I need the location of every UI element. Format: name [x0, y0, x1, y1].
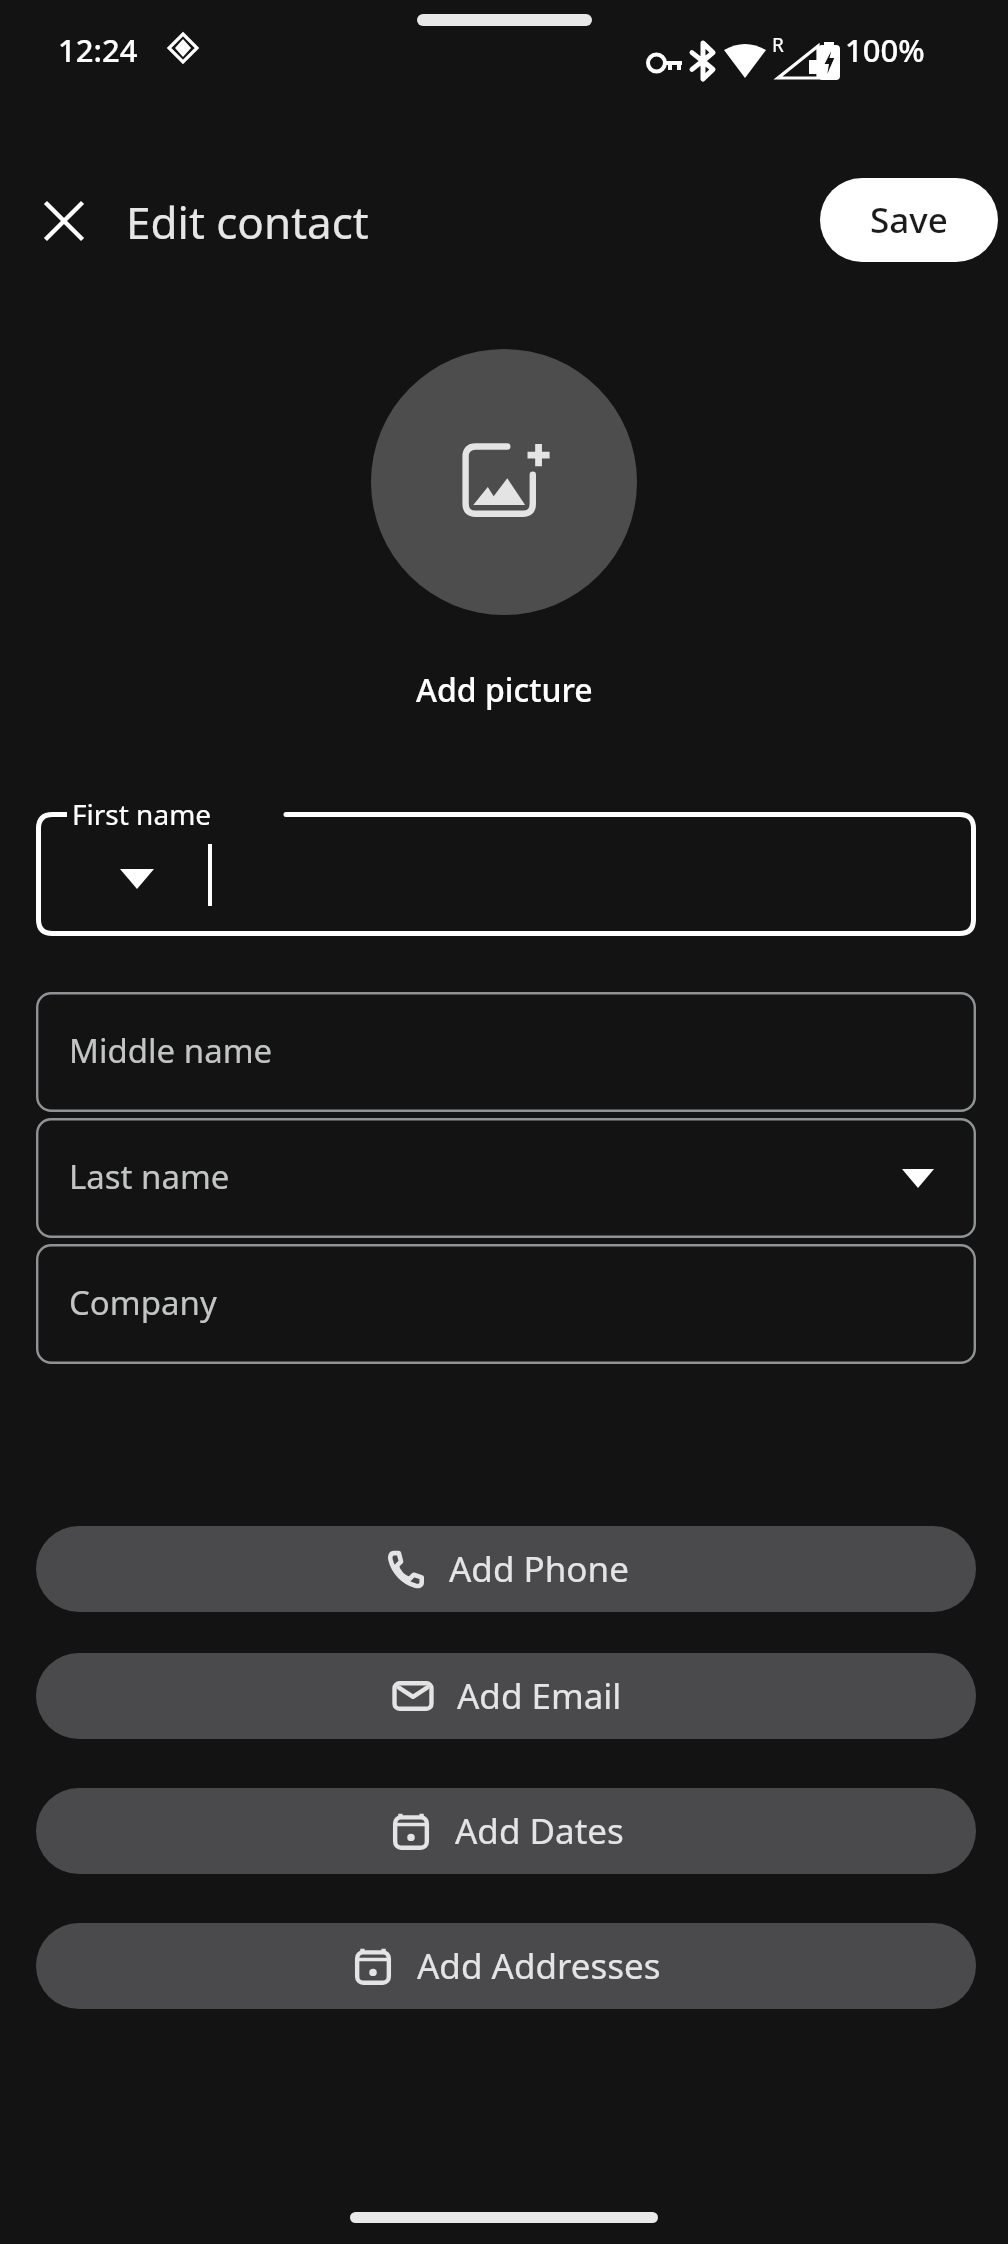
staticText: Save — [870, 196, 948, 244]
button[interactable] — [36, 812, 976, 936]
button[interactable]: Add picture — [0, 666, 1008, 714]
staticText: Add Email — [457, 1672, 622, 1720]
button[interactable]: Add Dates — [36, 1788, 976, 1874]
staticText: Add Addresses — [417, 1942, 661, 1990]
button[interactable]: Add Phone — [36, 1526, 976, 1612]
staticText: Add Phone — [449, 1545, 629, 1593]
button[interactable]: Add picture — [371, 349, 637, 615]
staticText: Company — [69, 1280, 217, 1325]
button[interactable]: Add Email — [36, 1653, 976, 1739]
staticText: 12:24 — [58, 29, 138, 71]
staticText: Add Dates — [455, 1807, 624, 1855]
staticText: 100% — [845, 29, 925, 71]
button[interactable]: Save — [820, 178, 998, 262]
button[interactable]: Company — [36, 1244, 976, 1364]
button[interactable]: Close — [26, 183, 102, 259]
staticText: First name — [72, 795, 212, 833]
button[interactable]: Middle name — [36, 992, 976, 1112]
button[interactable]: Add Addresses — [36, 1923, 976, 2009]
staticText: R — [772, 32, 784, 58]
staticText: Middle name — [69, 1028, 273, 1073]
button[interactable]: Last name — [36, 1118, 976, 1238]
staticText: Last name — [69, 1154, 230, 1199]
staticText: Edit contact — [126, 192, 369, 252]
staticText: Add picture — [416, 668, 593, 712]
